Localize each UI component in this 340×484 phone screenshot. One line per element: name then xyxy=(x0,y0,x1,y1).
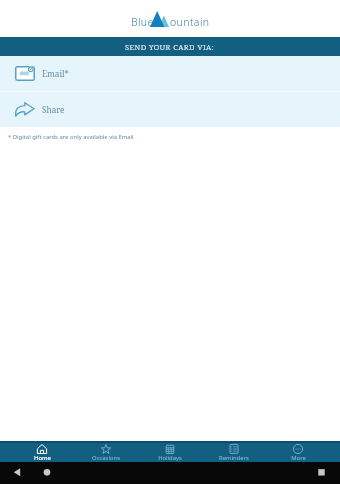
button[interactable]: Reminders xyxy=(202,443,266,462)
staticText: ountain xyxy=(170,15,210,29)
button[interactable]: Share xyxy=(0,92,340,127)
staticText: Share xyxy=(42,104,65,115)
staticText: * Digital gift cards are only available … xyxy=(8,133,134,141)
staticText: Home xyxy=(34,454,51,462)
staticText: Blue xyxy=(131,15,154,29)
staticText: Reminders xyxy=(219,454,249,462)
staticText: Occasions xyxy=(92,454,120,462)
staticText: Holidays xyxy=(158,454,182,462)
staticText: Email* xyxy=(42,68,69,79)
button[interactable]: Email* xyxy=(0,56,340,91)
button[interactable]: Holidays xyxy=(138,443,202,462)
button[interactable]: More xyxy=(266,443,330,462)
button[interactable]: Occasions xyxy=(74,443,138,462)
staticText: More xyxy=(291,454,306,462)
button[interactable]: Home xyxy=(10,443,74,462)
staticText: SEND YOUR CARD VIA: xyxy=(125,42,215,52)
other: System navigation xyxy=(0,462,340,484)
